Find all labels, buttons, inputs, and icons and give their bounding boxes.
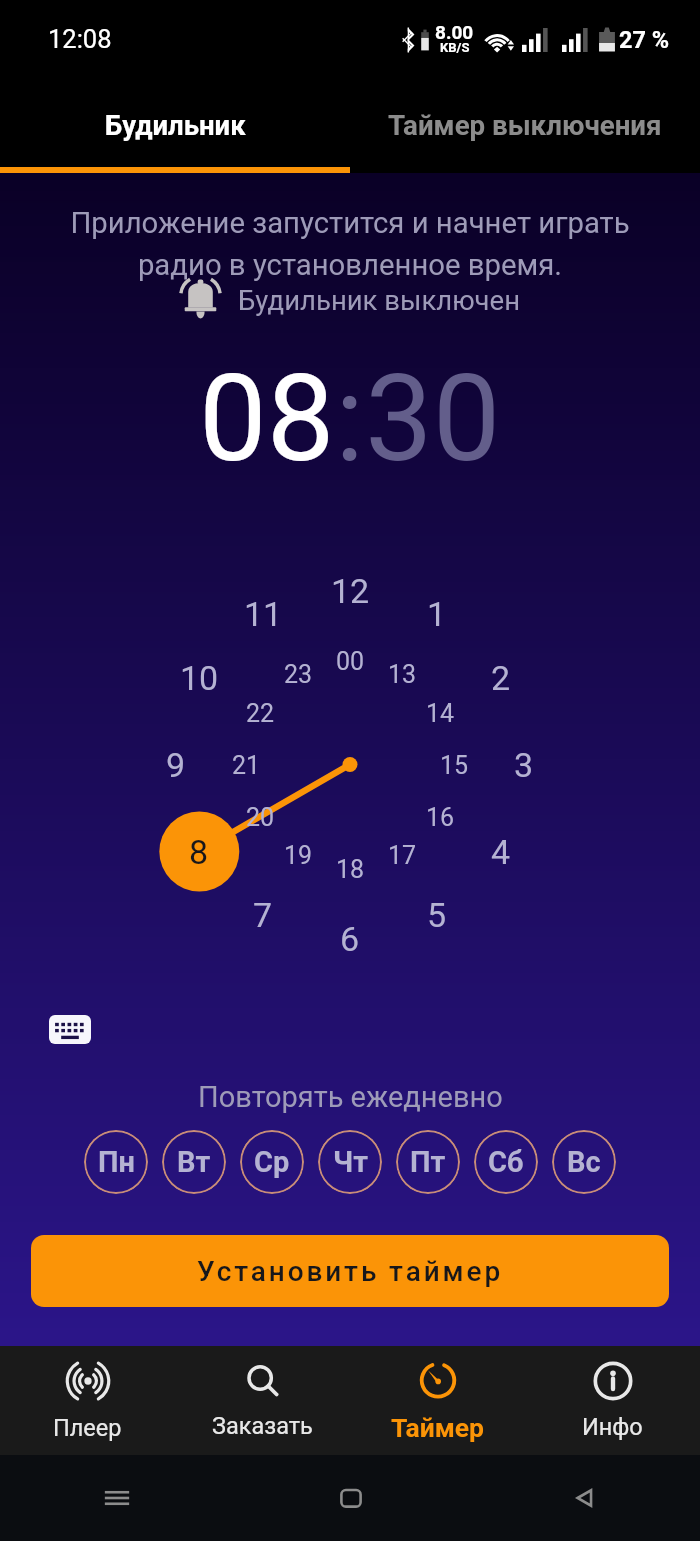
staticText: 10	[180, 658, 219, 698]
staticText: 23	[284, 660, 313, 689]
staticText: Будильник	[105, 109, 246, 141]
staticText: Пн	[98, 1145, 135, 1179]
staticText: 1	[427, 594, 447, 634]
staticText: 6	[340, 919, 360, 959]
button[interactable]: 4	[471, 822, 531, 882]
staticText: 8	[189, 832, 209, 872]
staticText: :	[335, 348, 365, 489]
button[interactable]: 12	[320, 561, 380, 621]
staticText: Заказать	[212, 1412, 313, 1440]
button[interactable]: 08	[199, 348, 335, 489]
button[interactable]: 7	[233, 885, 293, 945]
button[interactable]: Ср	[240, 1130, 304, 1194]
button[interactable]: Пт	[396, 1130, 460, 1194]
staticText: 14	[426, 699, 455, 728]
button[interactable]: Вс	[552, 1130, 616, 1194]
staticText: Пт	[410, 1145, 446, 1179]
button[interactable]: 00	[324, 635, 376, 687]
staticText: Ср	[254, 1145, 290, 1179]
staticText: 19	[284, 841, 313, 870]
staticText: 4	[491, 832, 511, 872]
button[interactable]: 19	[272, 829, 324, 881]
button[interactable]: Инфо	[525, 1346, 700, 1455]
button[interactable]: Будильник	[0, 78, 350, 173]
button[interactable]: Заказать	[175, 1346, 350, 1455]
button[interactable]: Home	[234, 1455, 467, 1541]
button[interactable]: 23	[272, 648, 324, 700]
button[interactable]: 14	[414, 687, 466, 739]
button[interactable]: Чт	[318, 1130, 382, 1194]
staticText: 12:08	[48, 24, 112, 54]
staticText: Вт	[177, 1145, 211, 1179]
button[interactable]: 9	[146, 735, 206, 795]
button[interactable]: 5	[407, 885, 467, 945]
button[interactable]: 10	[169, 648, 229, 708]
staticText: 5	[427, 895, 447, 935]
staticText: Повторять ежедневно	[198, 1080, 503, 1114]
button[interactable]: 3	[494, 735, 554, 795]
button[interactable]: Плеер	[0, 1346, 175, 1455]
staticText: 2	[491, 658, 511, 698]
button[interactable]: Таймер	[350, 1346, 525, 1455]
button[interactable]: Пн	[84, 1130, 148, 1194]
staticText: Вс	[567, 1145, 601, 1179]
button[interactable]: 15	[428, 739, 480, 791]
button[interactable]: Таймер выключения	[350, 78, 700, 173]
button[interactable]: 6	[320, 909, 380, 969]
button[interactable]: 1	[407, 584, 467, 644]
staticText: 27 %	[619, 26, 670, 54]
staticText: 11	[244, 594, 283, 634]
button[interactable]: Сб	[474, 1130, 538, 1194]
button[interactable]: Back	[467, 1455, 700, 1541]
staticText: 00	[336, 647, 365, 676]
staticText: Сб	[488, 1145, 524, 1179]
staticText: Инфо	[582, 1413, 643, 1441]
staticText: Чт	[333, 1145, 368, 1179]
button[interactable]: 8	[169, 822, 229, 882]
button[interactable]: 22	[234, 687, 286, 739]
button[interactable]: 30	[365, 348, 501, 489]
button[interactable]: 2	[471, 648, 531, 708]
button[interactable]: 18	[324, 843, 376, 895]
button[interactable]: 17	[376, 829, 428, 881]
staticText: 22	[246, 699, 275, 728]
button[interactable]: 21	[220, 739, 272, 791]
button[interactable]: 16	[414, 791, 466, 843]
staticText: Будильник выключен	[238, 284, 520, 316]
button[interactable]: Recent apps	[0, 1455, 234, 1541]
button[interactable]: Keyboard input	[49, 1015, 91, 1044]
button[interactable]: Вт	[162, 1130, 226, 1194]
staticText: Плеер	[53, 1414, 122, 1442]
staticText: 16	[426, 803, 455, 832]
staticText: Таймер	[391, 1412, 485, 1443]
staticText: 8.00	[435, 21, 474, 43]
staticText: Таймер выключения	[388, 109, 662, 141]
button[interactable]: 13	[376, 648, 428, 700]
staticText: Установить таймер	[197, 1255, 504, 1288]
staticText: 21	[232, 751, 261, 780]
staticText: Приложение запустится и начнет играть ра…	[0, 206, 700, 282]
staticText: 9	[166, 745, 186, 785]
staticText: 15	[440, 751, 469, 780]
staticText: KB/S	[440, 40, 470, 55]
staticText: 7	[253, 895, 273, 935]
staticText: 3	[514, 745, 534, 785]
staticText: 20	[246, 803, 275, 832]
staticText: 17	[388, 841, 417, 870]
button[interactable]: 20	[234, 791, 286, 843]
staticText: 12	[331, 571, 370, 611]
staticText: 13	[388, 660, 417, 689]
button[interactable]: 11	[233, 584, 293, 644]
staticText: 18	[336, 855, 365, 884]
button[interactable]: Установить таймер	[31, 1235, 669, 1307]
